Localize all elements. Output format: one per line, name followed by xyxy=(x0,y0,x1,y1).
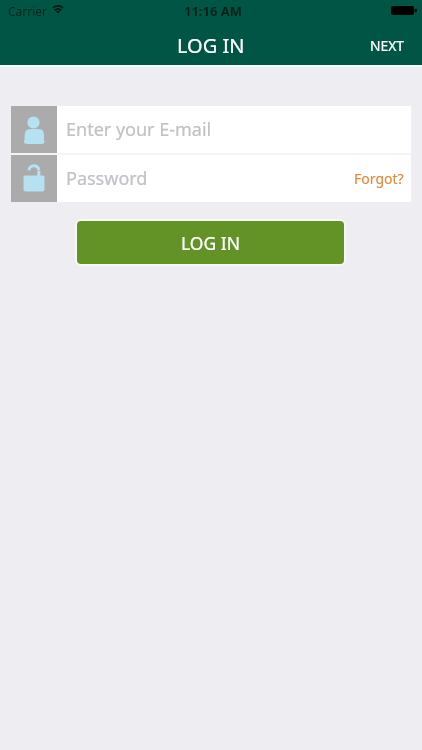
other: Wifi xyxy=(51,2,65,13)
staticText: Forgot? xyxy=(354,169,404,188)
button[interactable]: User xyxy=(11,106,411,153)
staticText: 11:16 AM xyxy=(184,2,243,20)
staticText: LOG IN xyxy=(181,231,241,255)
other: Battery xyxy=(391,6,417,15)
other: Password xyxy=(11,156,57,202)
button[interactable]: Forgot? xyxy=(342,161,411,196)
staticText: NEXT xyxy=(370,36,404,55)
button[interactable]: NEXT xyxy=(352,29,422,62)
staticText: Password xyxy=(66,166,148,191)
staticText: Enter your E-mail xyxy=(66,117,212,142)
button[interactable]: Password xyxy=(11,155,411,202)
button[interactable]: LOG IN xyxy=(77,221,344,264)
staticText: Carrier xyxy=(8,3,48,19)
other: User xyxy=(11,107,57,153)
staticText: LOG IN xyxy=(177,32,245,59)
